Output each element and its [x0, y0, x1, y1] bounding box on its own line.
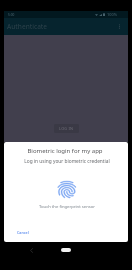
staticText: 5:00: [8, 13, 15, 17]
staticText: 100%: [107, 12, 117, 17]
button[interactable]: Back: [25, 244, 37, 256]
staticText: Touch the fingerprint sensor: [5, 204, 128, 210]
staticText: Biometric login for my app: [4, 147, 127, 155]
staticText: Log in using your biometric credential: [5, 158, 128, 165]
button[interactable]: More options: [114, 21, 125, 32]
staticText: Authenticate: [7, 22, 48, 31]
button[interactable]: LOG IN: [54, 124, 79, 133]
staticText: LOG IN: [59, 126, 74, 131]
button[interactable]: Cancel: [17, 227, 29, 238]
staticText: Cancel: [17, 230, 29, 235]
button[interactable]: Home: [61, 248, 71, 252]
